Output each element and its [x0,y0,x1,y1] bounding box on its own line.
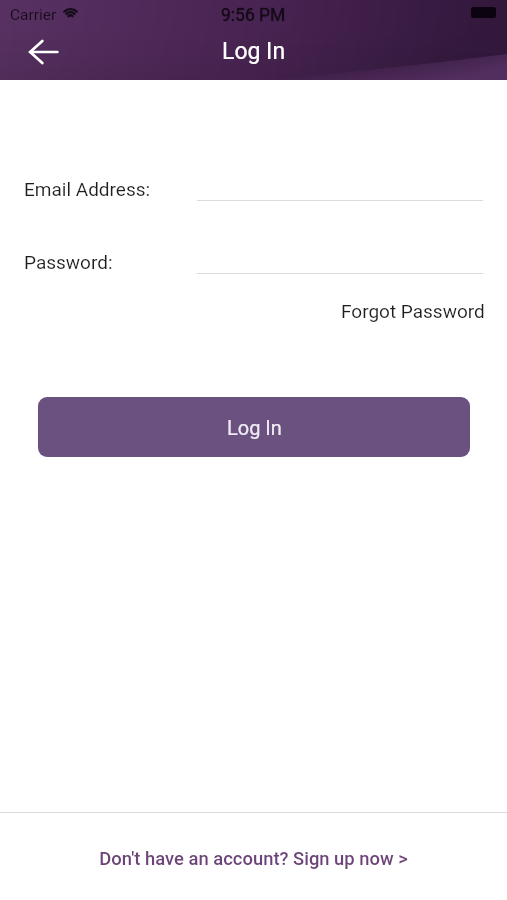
staticText: Log In [222,38,286,65]
button[interactable]: Log In [38,397,470,457]
button[interactable]: Forgot Password [341,300,485,322]
button[interactable]: Don't have an account? Sign up now > [0,817,507,900]
staticText: Password: [24,251,113,273]
staticText: Don't have an account? Sign up now > [99,848,408,870]
staticText: Email Address: [24,178,151,200]
button[interactable]: Back [21,30,65,74]
staticText: Log In [227,416,282,439]
staticText: Forgot Password [341,300,485,322]
staticText: Carrier [10,6,57,24]
staticText: 9:56 PM [221,5,286,26]
